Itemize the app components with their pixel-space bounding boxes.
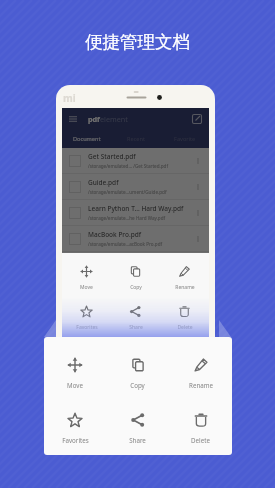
staticText: Share <box>129 436 146 444</box>
button[interactable]: Share <box>106 412 169 444</box>
staticText: Copy <box>130 381 145 389</box>
button[interactable]: Document <box>62 130 111 148</box>
button[interactable]: Guide.pdf <box>62 174 209 199</box>
button[interactable]: Copy <box>106 357 169 389</box>
button[interactable]: MacBook Pro.pdf <box>62 226 209 251</box>
staticText: element <box>100 114 128 124</box>
staticText: Guide.pdf <box>88 178 119 187</box>
staticText: Document <box>73 135 101 143</box>
staticText: Recent <box>127 135 145 143</box>
staticText: Favorites <box>76 324 98 331</box>
button[interactable]: Share <box>111 305 160 331</box>
button[interactable]: Favorites <box>44 412 106 444</box>
staticText: Delete <box>177 324 193 331</box>
button[interactable]: Copy <box>111 265 160 291</box>
staticText: Share <box>129 324 143 331</box>
button[interactable]: Edit <box>192 114 202 124</box>
button[interactable]: Rename <box>169 357 232 389</box>
staticText: Rename <box>189 381 213 389</box>
staticText: Move <box>80 284 93 291</box>
staticText: 便捷管理文档 <box>85 31 190 53</box>
staticText: Delete <box>191 436 210 444</box>
staticText: Favorite <box>174 135 196 143</box>
button[interactable]: Learn Python T... Hard Way.pdf <box>62 200 209 225</box>
button[interactable]: Menu <box>69 115 77 123</box>
button[interactable]: Delete <box>160 305 209 331</box>
staticText: Get Started.pdf <box>88 152 136 161</box>
staticText: pdf <box>88 114 100 124</box>
button[interactable]: Get Started.pdf <box>62 148 209 173</box>
staticText: Copy <box>130 284 142 291</box>
staticText: /storage/emulated... /Get Started.pdf <box>88 163 168 169</box>
button[interactable]: Delete <box>169 412 232 444</box>
staticText: /storage/emulate...acBook Pro.pdf <box>88 241 163 247</box>
staticText: Favorites <box>62 436 89 444</box>
staticText: /storage/emulate...ument/Guide.pdf <box>88 189 167 195</box>
staticText: mi <box>63 91 76 105</box>
staticText: /storage/emulate...he Hard Way.pdf <box>88 215 166 221</box>
button[interactable]: Move <box>62 265 111 291</box>
staticText: Rename <box>175 284 195 291</box>
button[interactable]: Favorites <box>62 305 111 331</box>
staticText: Move <box>67 381 83 389</box>
button[interactable]: Rename <box>160 265 209 291</box>
button[interactable]: Move <box>44 357 106 389</box>
staticText: MacBook Pro.pdf <box>88 230 142 239</box>
staticText: Learn Python T... Hard Way.pdf <box>88 204 184 213</box>
